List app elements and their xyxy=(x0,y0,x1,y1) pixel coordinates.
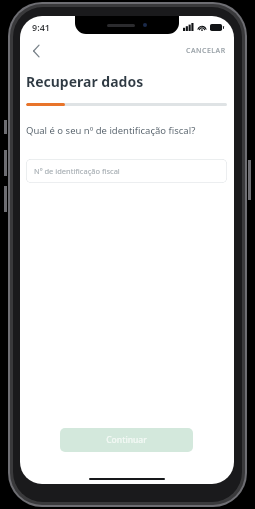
staticText: Continuar xyxy=(106,434,147,446)
button[interactable]: Nº de identificação fiscal xyxy=(26,159,227,183)
staticText: CANCELAR xyxy=(186,46,226,56)
button[interactable]: Continuar xyxy=(60,428,193,452)
staticText: Recuperar dados xyxy=(26,72,144,91)
staticText: 9:41 xyxy=(32,21,50,33)
button[interactable]: CANCELAR xyxy=(178,42,234,60)
staticText: Nº de identificação fiscal xyxy=(34,166,120,176)
staticText: Qual é o seu nº de identificação fiscal? xyxy=(26,124,196,137)
button[interactable]: Voltar xyxy=(24,39,48,63)
